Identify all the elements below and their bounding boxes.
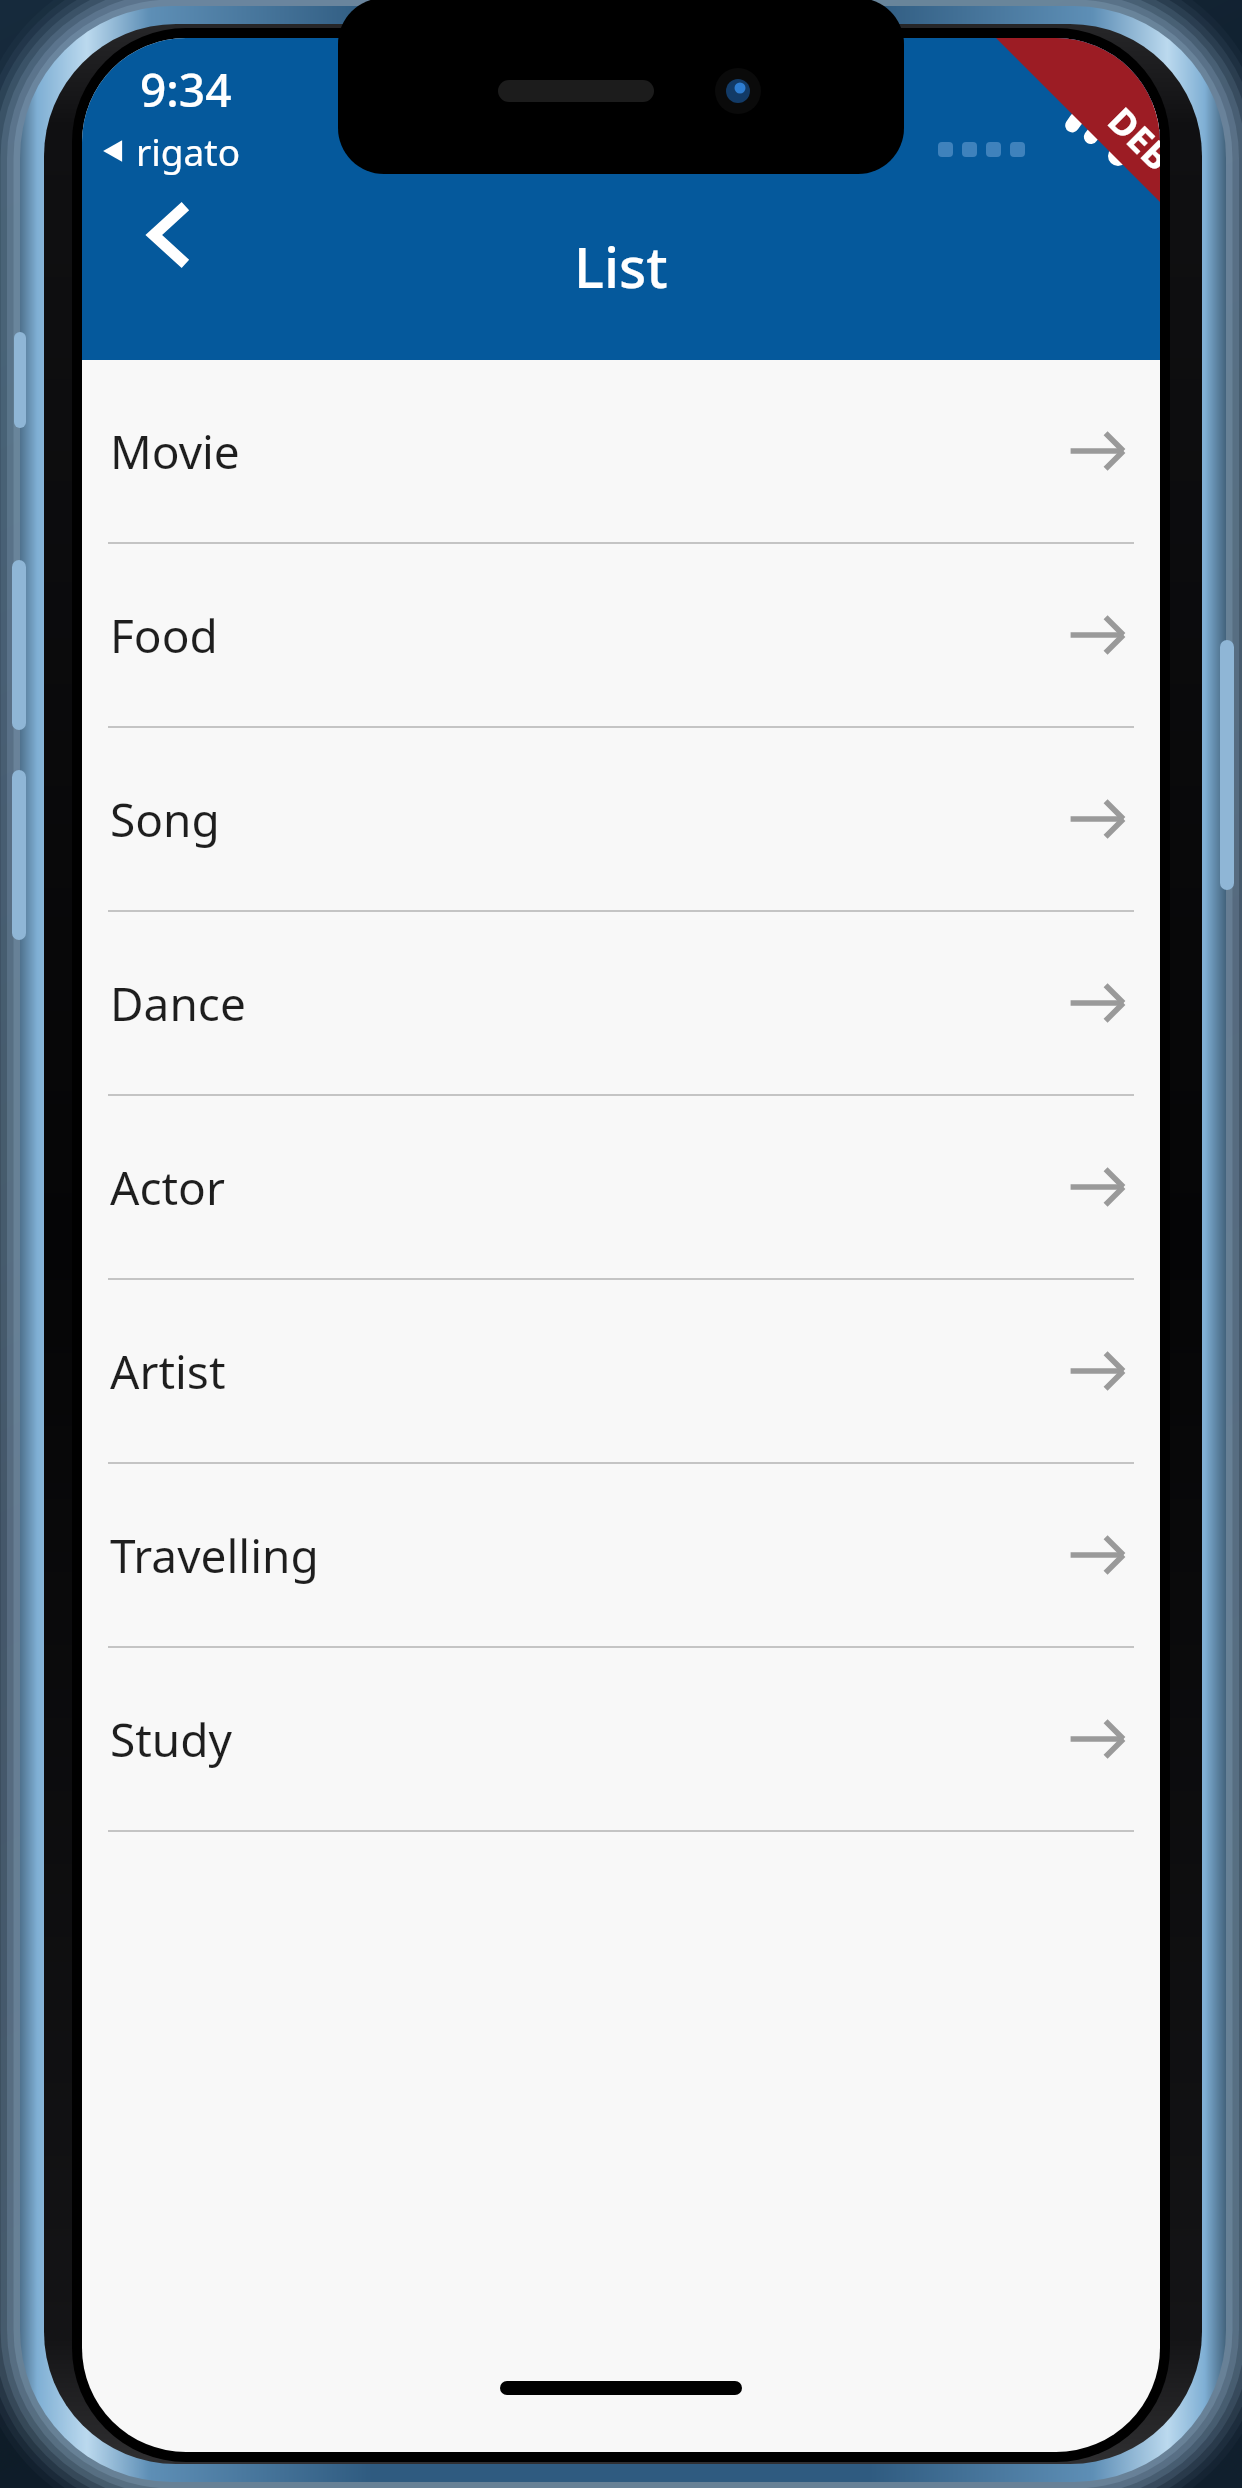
button[interactable]: Food bbox=[82, 544, 1160, 728]
button[interactable]: Artist bbox=[82, 1280, 1160, 1464]
button[interactable]: Travelling bbox=[82, 1464, 1160, 1648]
staticText: Travelling bbox=[110, 1524, 1064, 1587]
staticText: Movie bbox=[110, 420, 1064, 483]
staticText: Actor bbox=[110, 1156, 1064, 1219]
staticText: List bbox=[574, 228, 668, 304]
button[interactable]: Movie bbox=[82, 360, 1160, 544]
staticText: Song bbox=[110, 788, 1064, 851]
staticText: Food bbox=[110, 604, 1064, 667]
button[interactable]: Study bbox=[82, 1648, 1160, 1832]
staticText: Artist bbox=[110, 1340, 1064, 1403]
other: Signal, Wi-Fi and battery status bbox=[930, 96, 1160, 172]
staticText: 9:34 bbox=[140, 58, 232, 121]
staticText: Dance bbox=[110, 972, 1064, 1035]
staticText: rigato bbox=[136, 126, 241, 176]
staticText: Study bbox=[110, 1708, 1064, 1771]
button[interactable]: Dance bbox=[82, 912, 1160, 1096]
staticText: DEBUG bbox=[1098, 96, 1160, 219]
button[interactable]: Back bbox=[106, 170, 236, 300]
button[interactable]: Song bbox=[82, 728, 1160, 912]
button[interactable]: Actor bbox=[82, 1096, 1160, 1280]
